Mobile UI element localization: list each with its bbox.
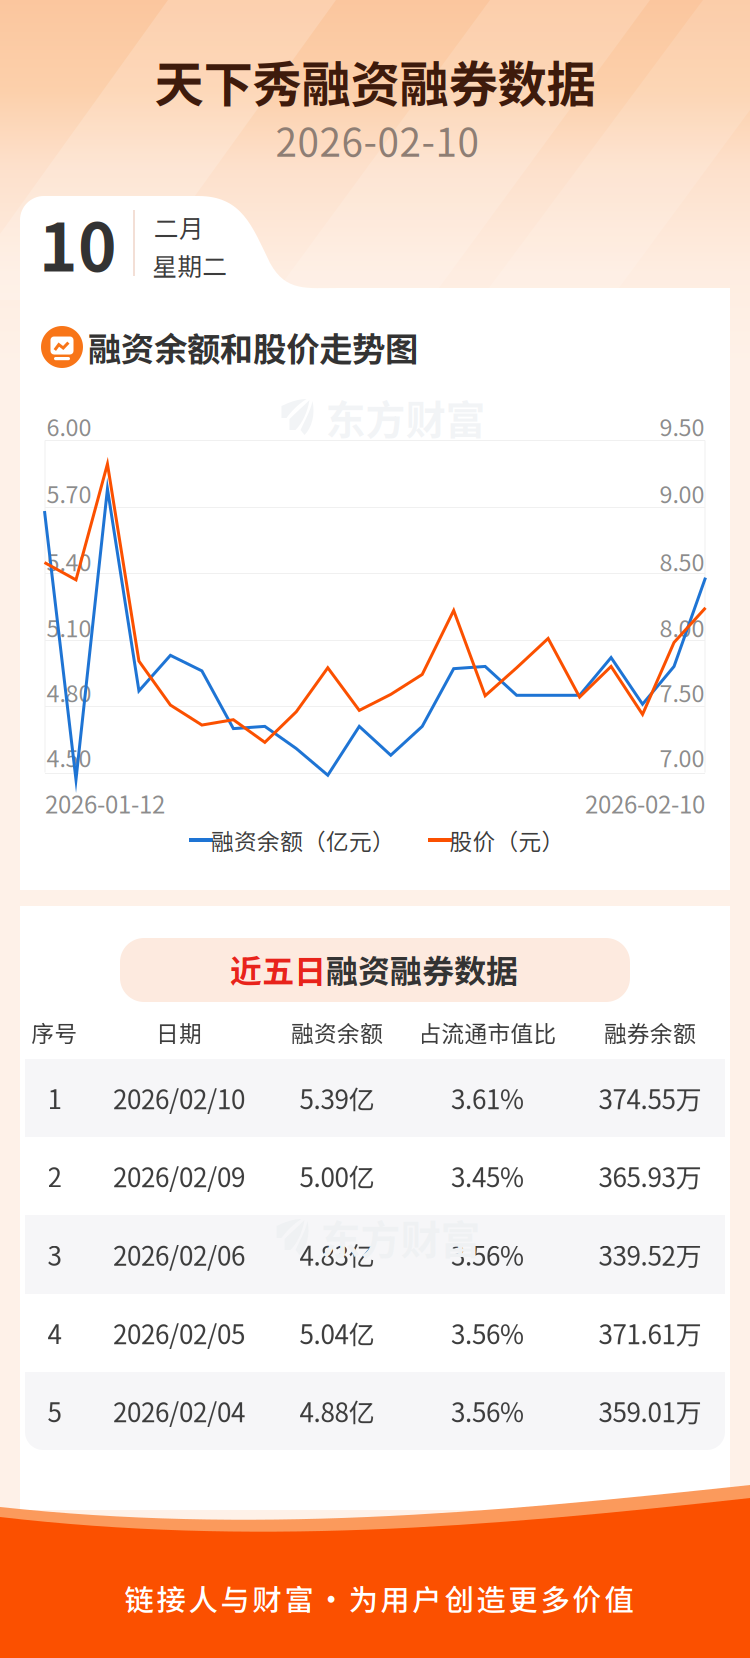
- staticText: 星期二: [152, 247, 227, 283]
- staticText: 日期: [156, 1016, 202, 1048]
- staticText: 3: [47, 1236, 61, 1273]
- staticText: 天下秀融资融券数据: [154, 45, 595, 117]
- staticText: 9.50: [659, 409, 704, 443]
- staticText: 339.52万: [598, 1236, 701, 1273]
- staticText: 链接人与财富·为用户创造更多价值: [124, 1577, 633, 1619]
- staticText: 2026/02/04: [113, 1392, 245, 1430]
- staticText: 10: [39, 196, 117, 290]
- staticText: 2: [47, 1157, 61, 1195]
- staticText: 东方财富: [320, 1208, 480, 1266]
- staticText: 365.93万: [598, 1157, 701, 1195]
- staticText: 2026-01-12: [45, 786, 165, 820]
- staticText: 1: [47, 1079, 61, 1117]
- staticText: 5.40: [46, 544, 91, 578]
- staticText: 融资余额和股价走势图: [88, 323, 418, 371]
- staticText: 二月: [154, 209, 204, 245]
- staticText: 3.45%: [451, 1157, 524, 1195]
- staticText: 近五日: [230, 946, 326, 992]
- staticText: 8.50: [659, 544, 704, 578]
- staticText: 2026-02-10: [585, 786, 705, 820]
- staticText: 2026/02/06: [113, 1236, 245, 1273]
- staticText: 5.04亿: [299, 1314, 374, 1352]
- staticText: 4.88亿: [299, 1392, 374, 1430]
- staticText: 4: [47, 1314, 61, 1352]
- staticText: 3.56%: [451, 1314, 524, 1352]
- staticText: 6.00: [46, 409, 91, 443]
- staticText: 5.39亿: [299, 1079, 374, 1117]
- staticText: 5: [47, 1392, 61, 1430]
- staticText: 融资余额（亿元）: [211, 824, 395, 856]
- staticText: 4.50: [46, 740, 91, 774]
- staticText: 4.80: [46, 675, 91, 709]
- staticText: 2026/02/09: [113, 1157, 245, 1195]
- staticText: 2026-02-10: [275, 112, 478, 168]
- staticText: 371.61万: [598, 1314, 701, 1352]
- staticText: 374.55万: [598, 1079, 701, 1117]
- staticText: 融券余额: [604, 1016, 696, 1048]
- staticText: 8.00: [659, 610, 704, 644]
- staticText: 融资融券数据: [326, 946, 518, 992]
- staticText: 东方财富: [325, 388, 485, 446]
- staticText: 3.61%: [451, 1079, 524, 1117]
- staticText: 359.01万: [598, 1392, 701, 1430]
- staticText: 股价（元）: [449, 824, 564, 856]
- staticText: 9.00: [659, 476, 704, 510]
- staticText: 2026/02/10: [113, 1079, 245, 1117]
- staticText: 7.00: [659, 740, 704, 774]
- staticText: 5.10: [46, 610, 91, 644]
- staticText: 序号: [31, 1016, 77, 1048]
- staticText: 融资余额: [291, 1016, 383, 1048]
- staticText: 5.70: [46, 476, 91, 510]
- staticText: 3.56%: [451, 1392, 524, 1430]
- staticText: 2026/02/05: [113, 1314, 245, 1352]
- staticText: 7.50: [659, 675, 704, 709]
- staticText: 3.56%: [451, 1236, 524, 1273]
- staticText: 4.83亿: [299, 1236, 374, 1273]
- staticText: 5.00亿: [299, 1157, 374, 1195]
- staticText: 占流通市值比: [418, 1016, 556, 1048]
